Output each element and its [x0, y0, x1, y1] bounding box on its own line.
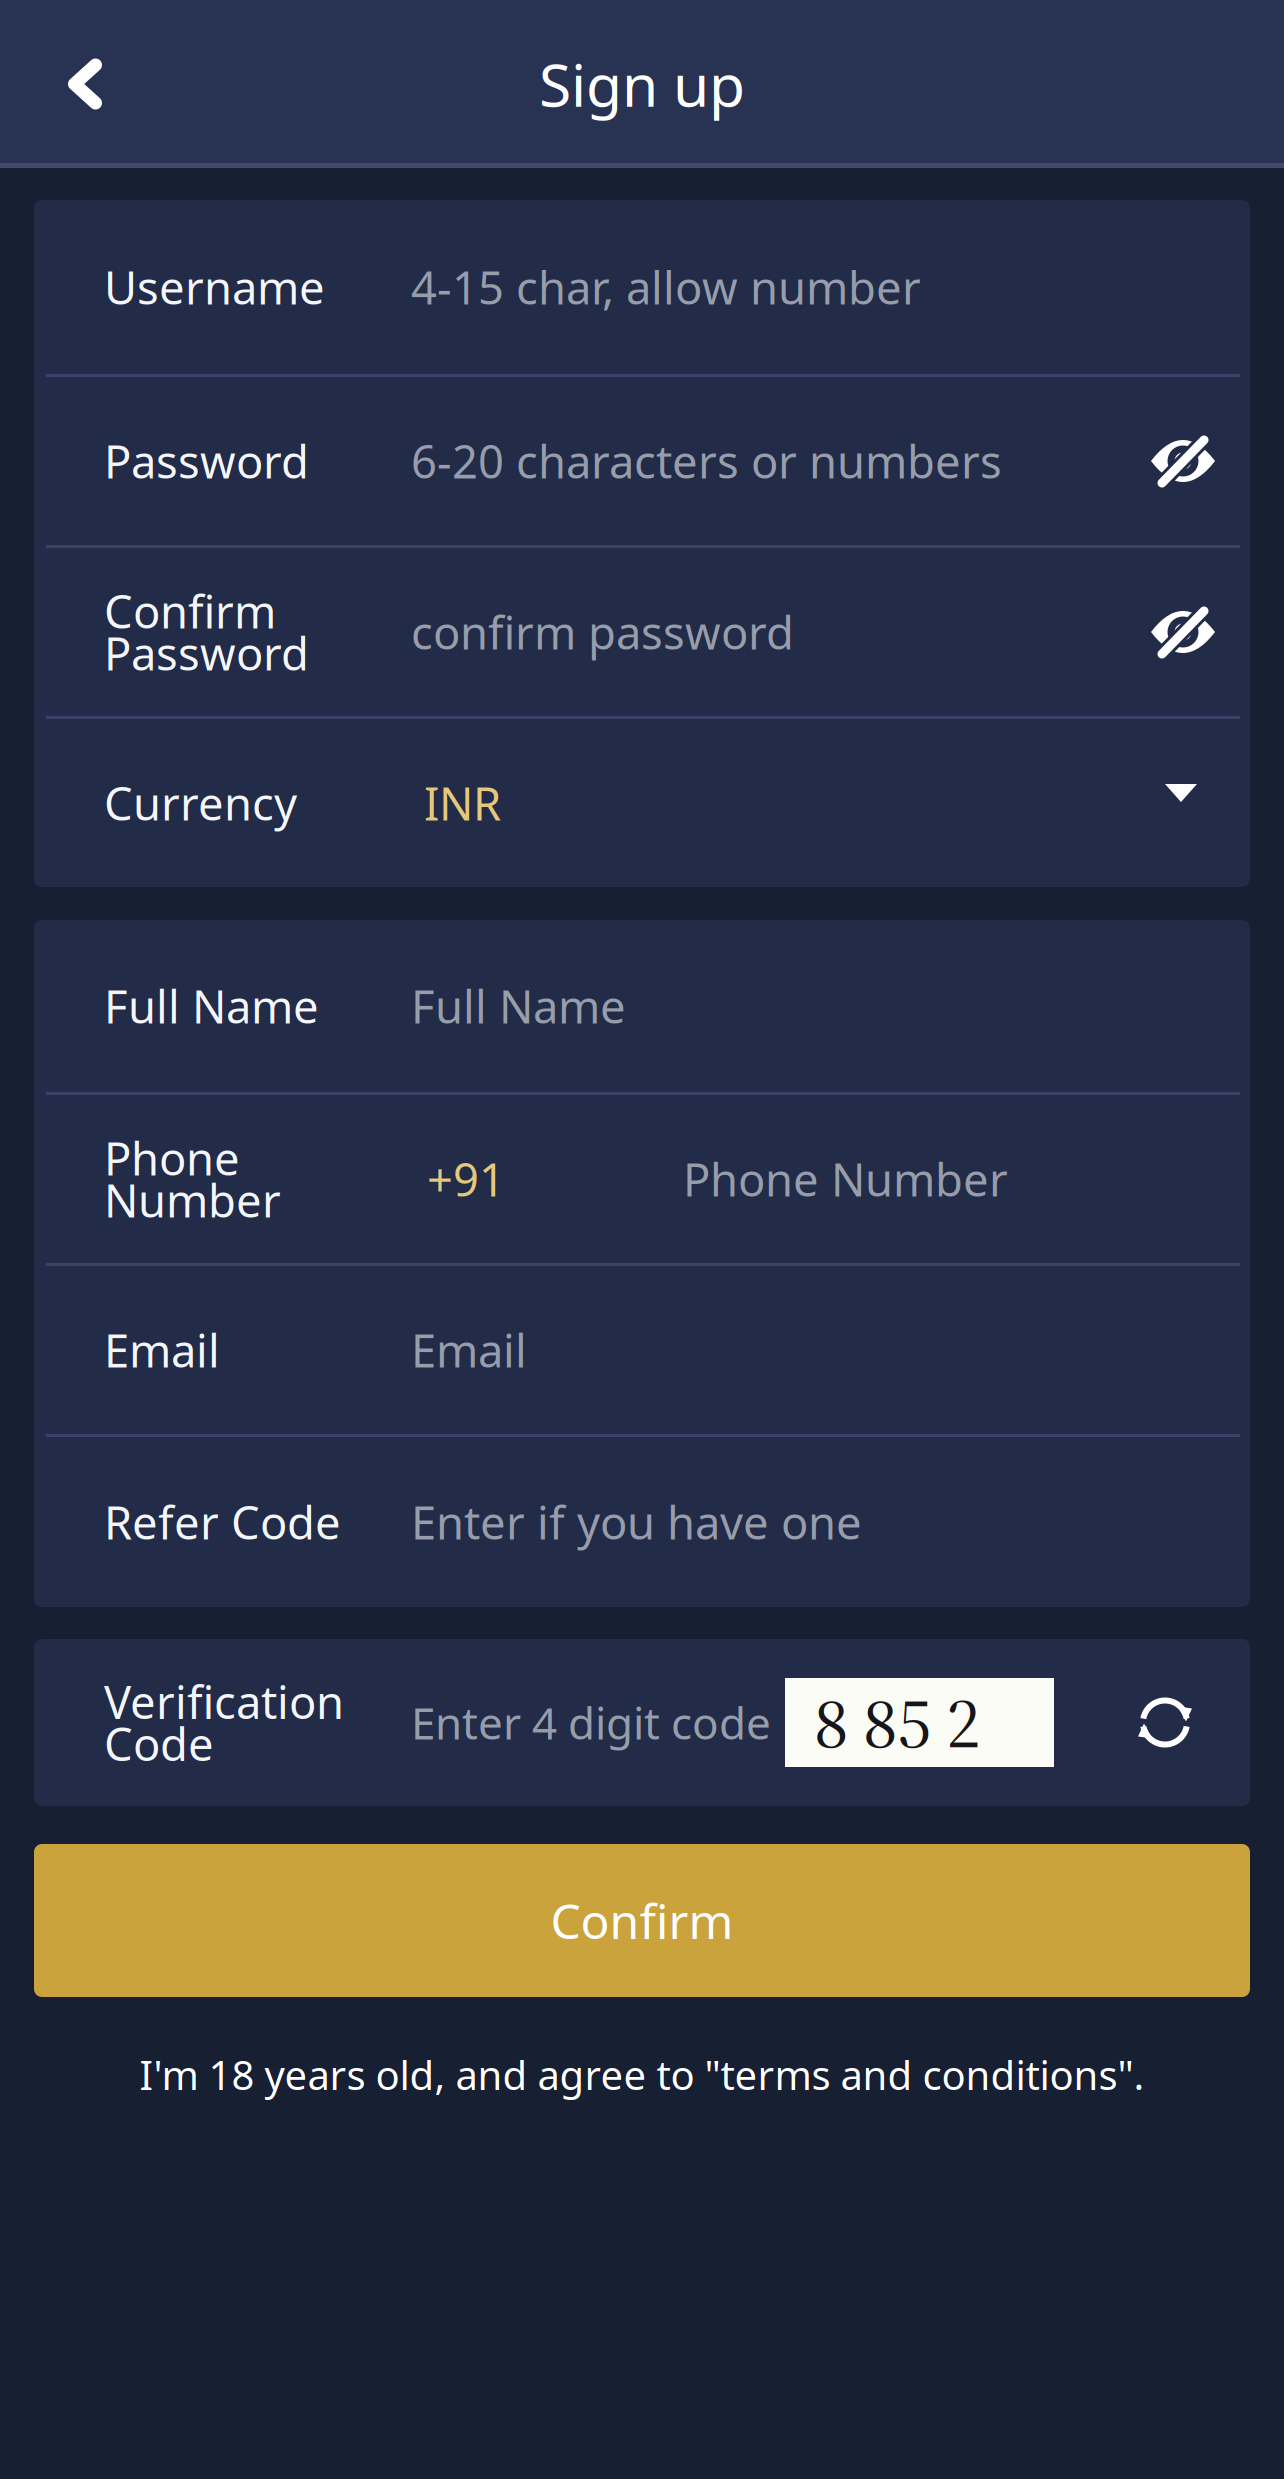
- staticText: Email: [104, 1320, 220, 1380]
- button[interactable]: Back: [33, 28, 137, 140]
- staticText: Username: [104, 257, 325, 317]
- staticText: Number: [104, 1170, 281, 1230]
- staticText: Email: [411, 1320, 527, 1380]
- button[interactable]: Refresh verification code: [1136, 1693, 1194, 1751]
- button[interactable]: Confirm: [34, 1844, 1250, 1997]
- staticText: Phone: [104, 1128, 240, 1188]
- staticText: Password: [104, 431, 309, 491]
- staticText: Verification: [104, 1671, 344, 1732]
- staticText: +91: [427, 1149, 505, 1209]
- staticText: Full Name: [411, 976, 626, 1036]
- staticText: 4-15 char, allow number: [411, 257, 921, 317]
- staticText: Refer Code: [104, 1492, 341, 1552]
- staticText: Enter 4 digit code: [411, 1693, 771, 1752]
- staticText: Currency: [104, 773, 297, 833]
- button[interactable]: Show confirm password: [1148, 597, 1218, 667]
- staticText: Sign up: [539, 45, 745, 123]
- staticText: Phone Number: [683, 1149, 1008, 1209]
- staticText: Confirm: [550, 1889, 733, 1952]
- staticText: Enter if you have one: [411, 1492, 862, 1552]
- staticText: 8 85 2: [814, 1674, 980, 1771]
- staticText: I'm 18 years old, and agree to "terms an…: [139, 2048, 1144, 2101]
- staticText: confirm password: [411, 602, 794, 662]
- button[interactable]: Show password: [1148, 426, 1218, 496]
- staticText: 6-20 characters or numbers: [411, 431, 1002, 491]
- staticText: Confirm: [104, 581, 276, 641]
- staticText: INR: [424, 773, 501, 833]
- button[interactable]: Currency: [34, 719, 1250, 887]
- staticText: Code: [104, 1713, 214, 1774]
- button[interactable]: I'm 18 years old, and agree to "terms an…: [109, 2032, 1174, 2117]
- staticText: Full Name: [104, 976, 319, 1036]
- staticText: Password: [104, 623, 309, 683]
